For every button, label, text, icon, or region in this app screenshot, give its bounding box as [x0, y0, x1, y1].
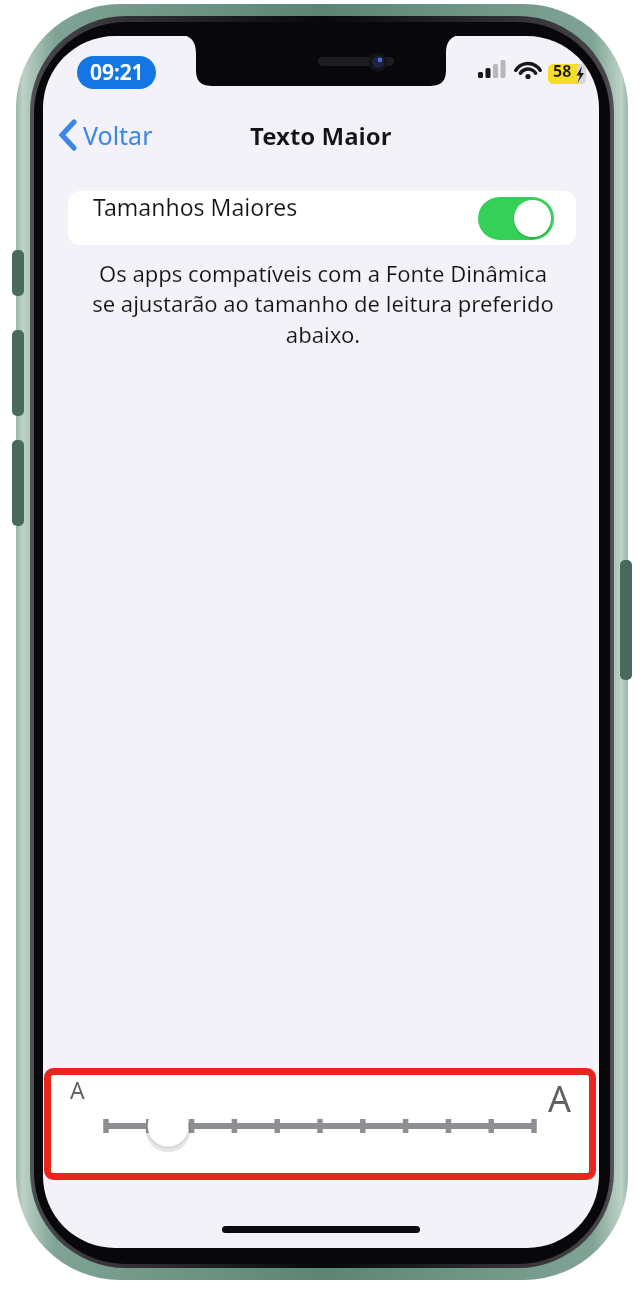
staticText: Tamanhos Maiores [93, 191, 298, 245]
button[interactable]: Tamanhos Maiores [68, 191, 576, 245]
staticText: Os apps compatíveis com a Fonte Dinâmica… [88, 258, 558, 350]
staticText: Voltar [83, 118, 153, 152]
button[interactable]: Tamanho do texto [50, 1074, 590, 1174]
staticText: A [70, 1074, 85, 1174]
staticText: Texto Maior [250, 119, 392, 152]
staticText: A [548, 1074, 572, 1174]
button[interactable]: Tamanhos Maiores ligado [478, 197, 554, 240]
button[interactable]: Voltar [54, 110, 168, 160]
staticText: 58 [553, 60, 572, 82]
staticText: 09:21 [90, 58, 144, 87]
